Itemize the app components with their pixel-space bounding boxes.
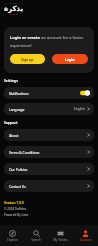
button[interactable]: Login (52, 54, 88, 64)
staticText: Language (9, 107, 25, 111)
staticText: Version 1.0.0 (4, 201, 24, 205)
staticText: Terms & Conditions (9, 150, 40, 154)
staticText: Notifications (9, 91, 29, 95)
button[interactable]: About (4, 129, 94, 141)
staticText: Account (80, 238, 92, 242)
staticText: Login or create an account for a faster … (10, 35, 88, 48)
staticText: English (74, 107, 85, 111)
staticText: Settings (4, 78, 18, 83)
staticText: T A D H K I R A (5, 2, 24, 5)
staticText: Support (4, 120, 18, 125)
staticText: TICKETS (9, 13, 19, 16)
staticText: Explore (7, 238, 18, 242)
staticText: Login (65, 57, 75, 62)
button[interactable]: Notifications toggle (80, 90, 90, 96)
button[interactable]: Contact Us (4, 180, 94, 192)
button[interactable]: Language (4, 103, 94, 115)
staticText: Contact Us (9, 184, 26, 188)
staticText: My Tickets (53, 238, 68, 242)
staticText: Our Policies (9, 167, 28, 171)
button[interactable]: My Tickets (48, 230, 73, 242)
staticText: © 2024 Tadhkra (4, 207, 27, 211)
staticText: بذكرة (4, 5, 24, 13)
button[interactable]: Sign up (10, 54, 45, 64)
button[interactable]: Terms & Conditions (4, 146, 94, 158)
staticText: Sign up (21, 57, 34, 62)
staticText: About (9, 133, 19, 137)
button[interactable]: Explore (0, 230, 24, 242)
staticText: Search (31, 238, 41, 242)
button[interactable]: Account (73, 230, 98, 242)
staticText: Powered By Liner (4, 213, 29, 217)
button[interactable]: Search (24, 230, 48, 242)
button[interactable]: Our Policies (4, 163, 94, 175)
button[interactable]: Notifications (4, 87, 94, 99)
